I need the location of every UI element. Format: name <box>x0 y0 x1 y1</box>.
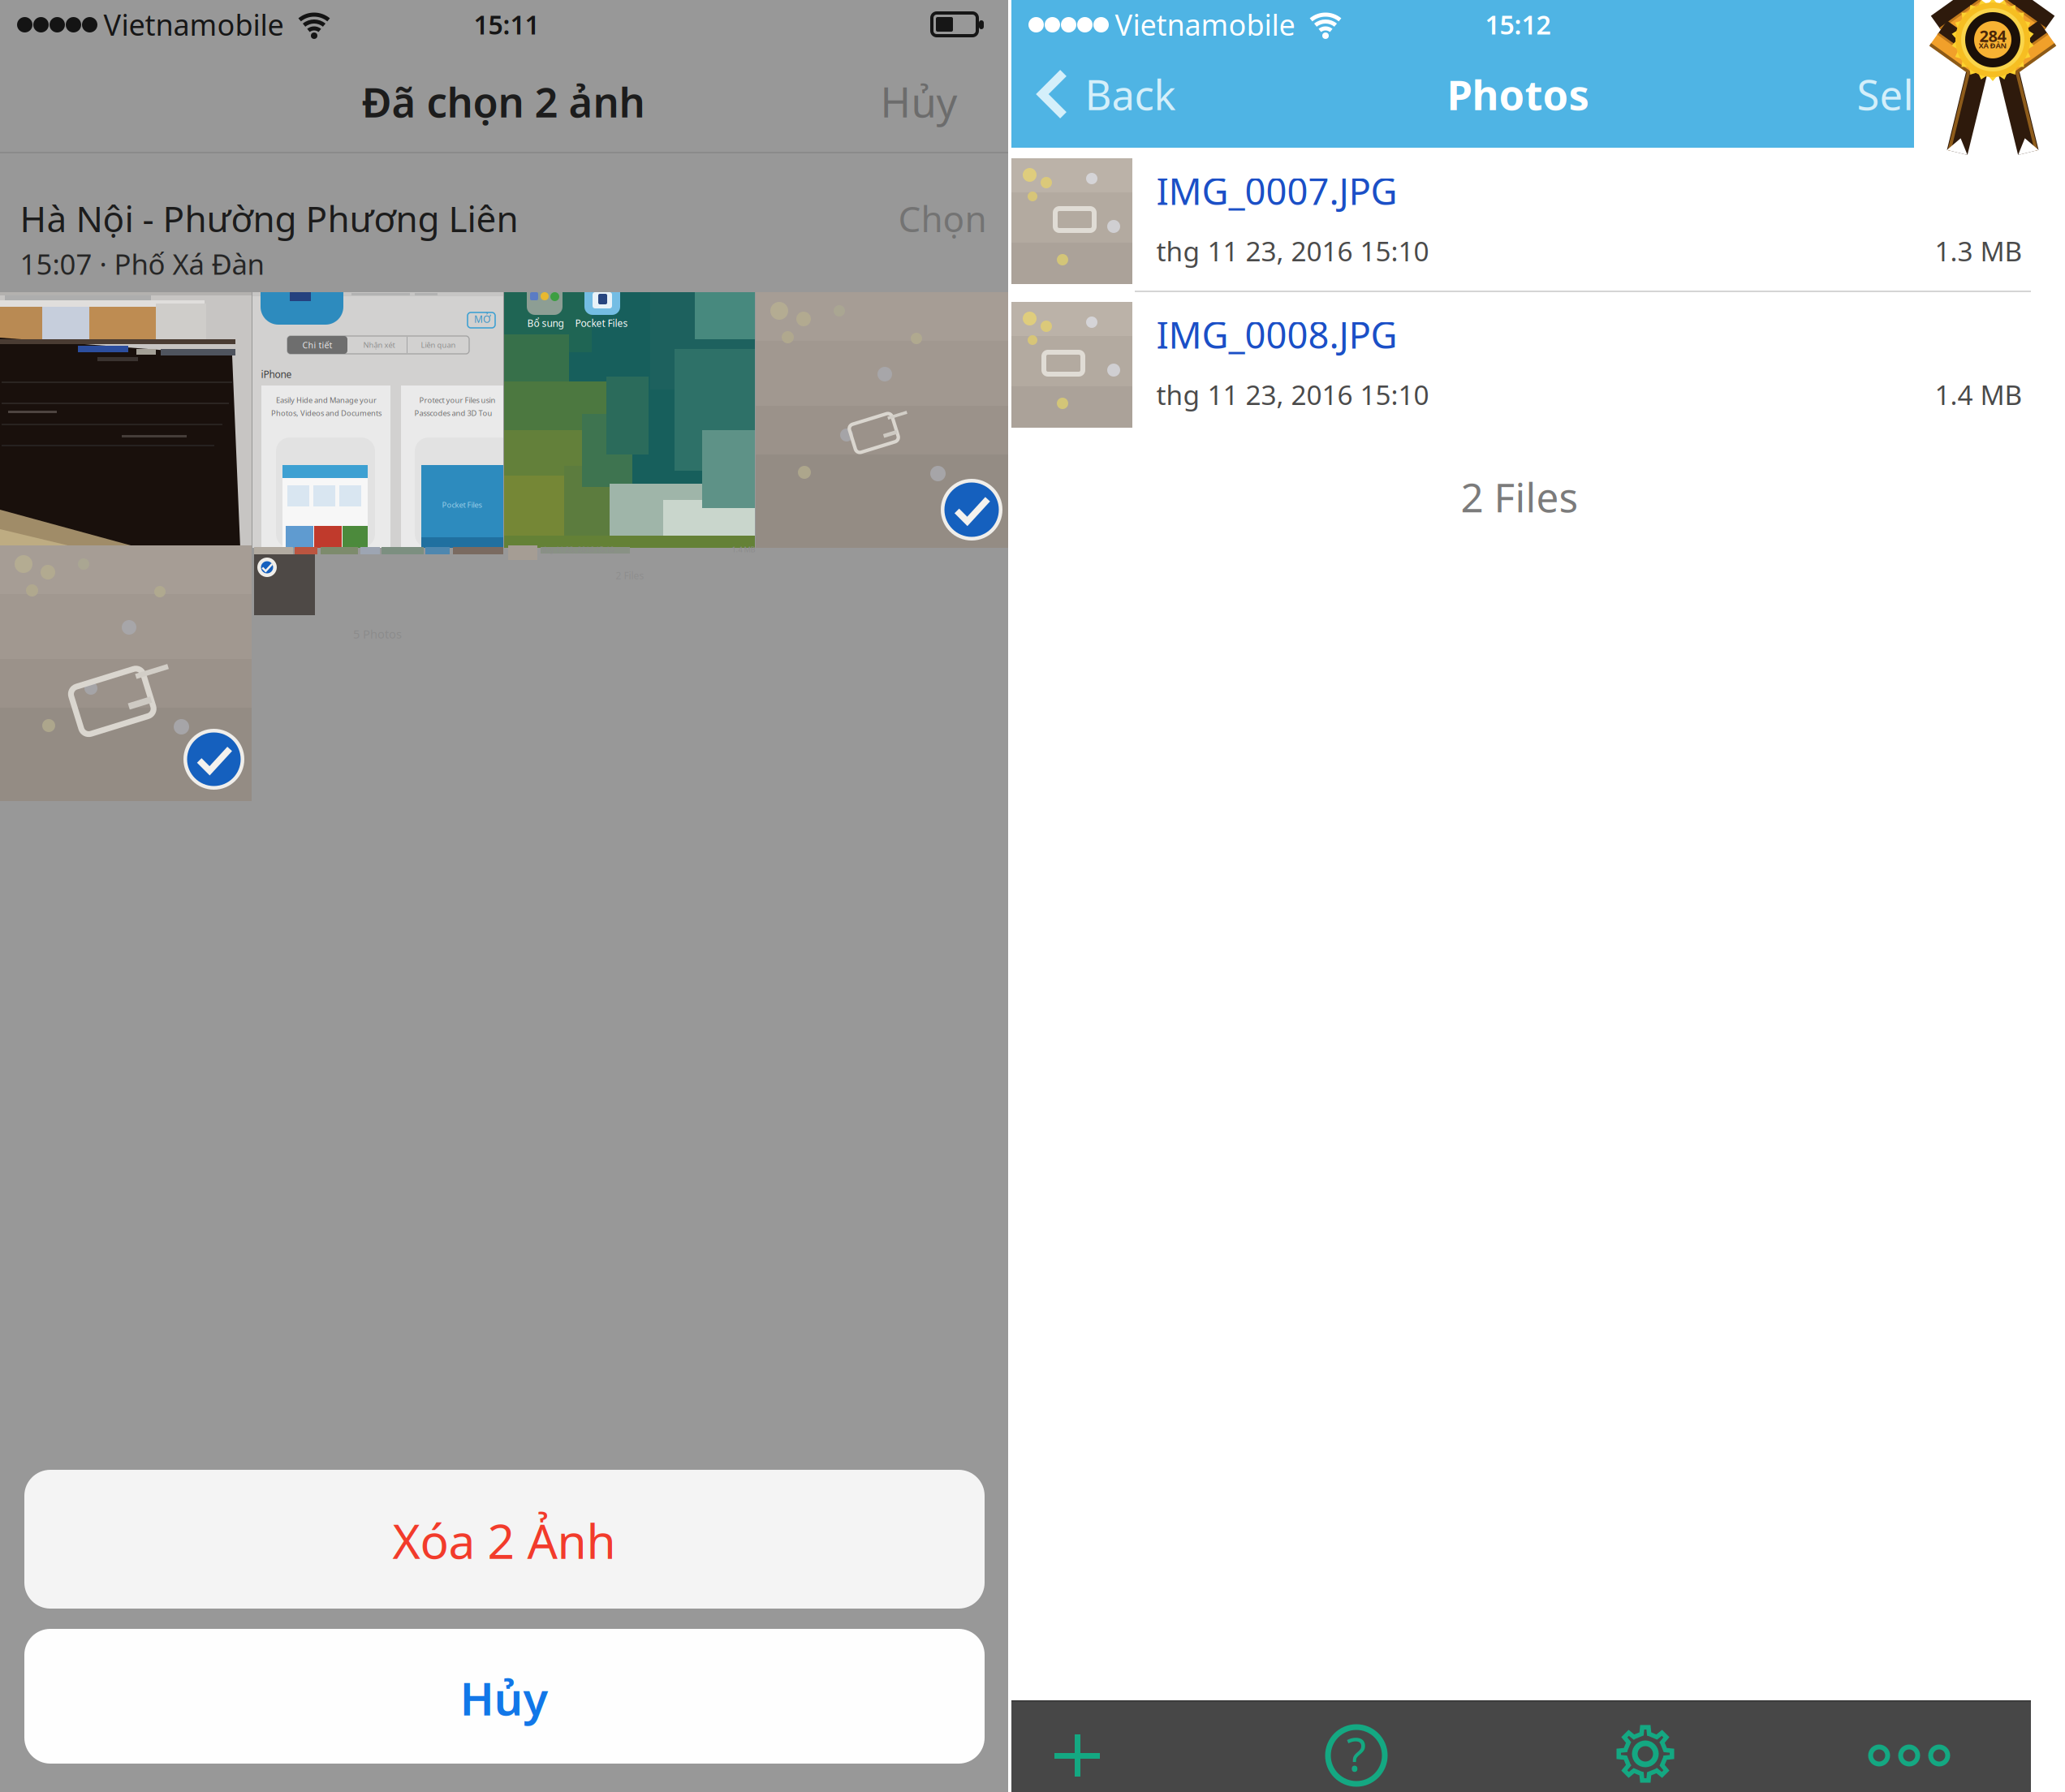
staticText: Vietnamobile <box>103 5 284 44</box>
button[interactable]: Hủy <box>24 1629 985 1764</box>
button[interactable]: More <box>1857 1711 1961 1792</box>
staticText: 2 Files <box>1461 470 1578 523</box>
button[interactable]: Back <box>1011 44 1214 144</box>
staticText: Xóa 2 Ảnh <box>392 1509 616 1572</box>
button[interactable]: Xóa 2 Ảnh <box>24 1470 985 1609</box>
button[interactable]: IMG_0007.JPG <box>1011 158 2031 284</box>
staticText: Passcodes and 3D Tou <box>414 408 492 418</box>
staticText: Nhận xét <box>363 340 395 350</box>
staticText: thg 11 23, 2016 15:10 <box>542 544 614 554</box>
staticText: Select <box>1857 67 1971 121</box>
staticText: Liên quan <box>421 340 456 350</box>
button[interactable]: Settings <box>1601 1709 1690 1792</box>
staticText: IMG_0008.JPG <box>1156 310 1397 359</box>
staticText: Pocket Files <box>442 500 482 510</box>
staticText: IMG_0007.JPG <box>1156 166 1397 215</box>
staticText: XÃ ĐÀN <box>1979 40 2007 50</box>
button[interactable]: Hủy <box>826 49 989 154</box>
staticText: 15:12 <box>1485 7 1551 42</box>
staticText: Vietnamobile <box>1115 5 1295 44</box>
staticText: 1.4 MB <box>732 544 755 554</box>
staticText: 1.4 MB <box>1935 376 2022 412</box>
staticText: 5 Photos <box>353 626 402 642</box>
staticText: 1.3 MB <box>1935 233 2022 269</box>
staticText: 284 <box>1979 25 2006 47</box>
staticText: Chi tiết <box>302 339 332 351</box>
staticText: ? <box>1347 1724 1366 1784</box>
button[interactable]: Add <box>1032 1711 1122 1792</box>
button[interactable]: IMG_0008.JPG <box>1011 302 2031 428</box>
staticText: Photos <box>1447 67 1589 121</box>
staticText: Easily Hide and Manage your <box>276 395 377 405</box>
staticText: 15:07 · Phố Xá Đàn <box>20 245 264 282</box>
button[interactable]: Select <box>1831 44 2031 144</box>
staticText: thg 11 23, 2016 15:10 <box>1156 376 1429 412</box>
staticText: Đã chọn 2 ảnh <box>362 74 645 129</box>
button[interactable]: Help <box>1312 1711 1401 1792</box>
staticText: Chọn <box>898 195 987 242</box>
staticText: Protect your Files usin <box>419 395 496 405</box>
staticText: Hủy <box>460 1668 548 1728</box>
staticText: Hà Nội - Phường Phương Liên <box>20 195 518 242</box>
button[interactable]: Chọn <box>852 183 1008 256</box>
staticText: Photos, Videos and Documents <box>271 408 382 418</box>
staticText: Bổ sung <box>527 317 564 329</box>
staticText: 15:11 <box>474 7 539 42</box>
staticText: thg 11 23, 2016 15:10 <box>1156 233 1429 269</box>
staticText: Back <box>1085 67 1176 121</box>
staticText: 2 Files <box>616 569 644 582</box>
staticText: Pocket Files <box>575 317 628 329</box>
staticText: MỞ <box>474 312 490 325</box>
staticText: Hủy <box>880 74 957 129</box>
staticText: iPhone <box>261 368 292 381</box>
